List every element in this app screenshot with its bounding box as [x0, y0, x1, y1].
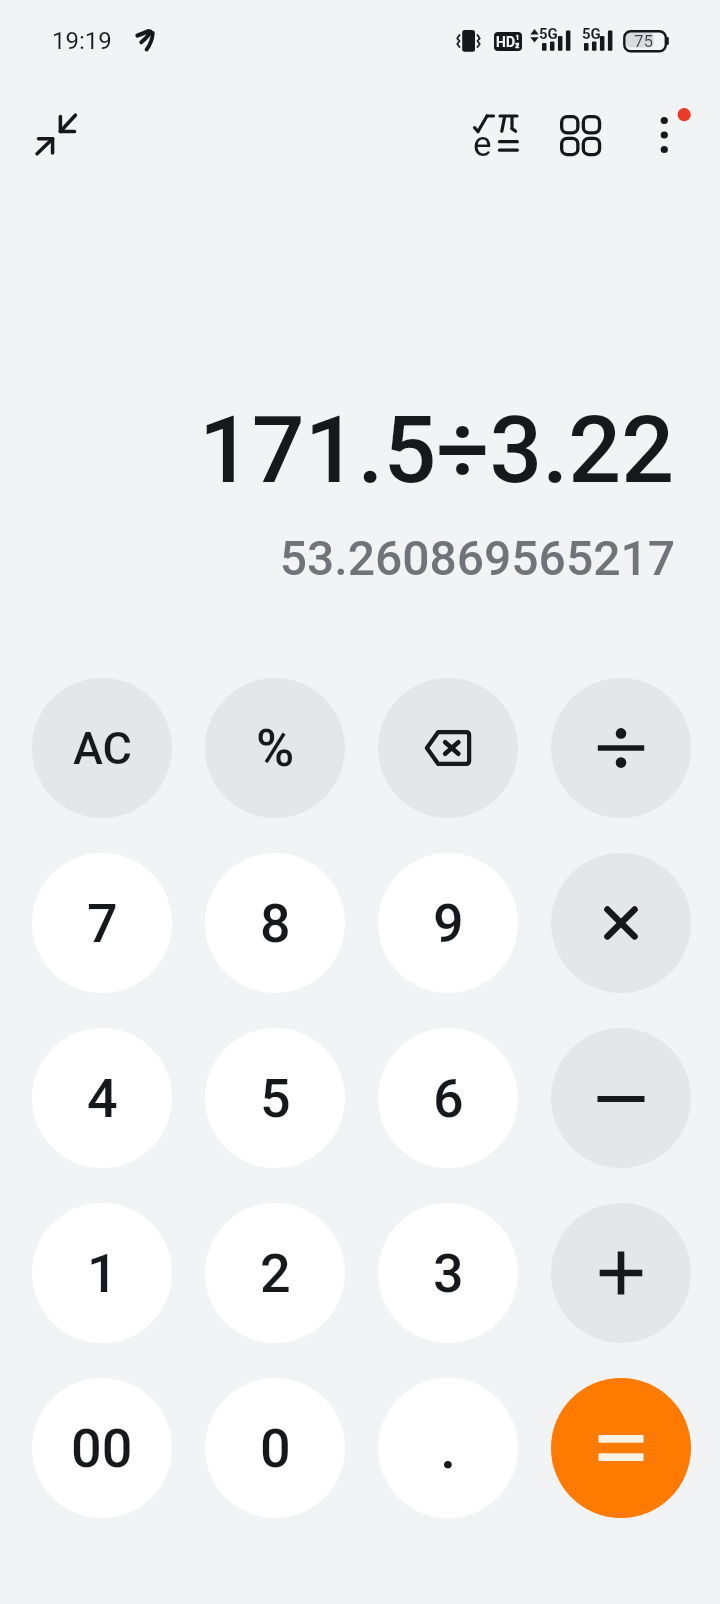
staticText: 75	[634, 31, 654, 51]
button[interactable]: 2	[205, 1203, 345, 1343]
button[interactable]: Equals	[551, 1378, 691, 1518]
button[interactable]: Minus	[551, 1028, 691, 1168]
button[interactable]: %	[205, 678, 345, 818]
staticText: 2	[260, 1242, 291, 1305]
staticText: 19:19	[52, 27, 112, 55]
staticText: 8	[260, 892, 291, 955]
button[interactable]: 00	[32, 1378, 172, 1518]
staticText: 5	[260, 1067, 291, 1130]
staticText: 00	[71, 1417, 133, 1480]
staticText: 7	[87, 892, 118, 955]
button[interactable]: Plus	[551, 1203, 691, 1343]
staticText: e	[473, 124, 492, 165]
staticText: 5G	[582, 25, 601, 43]
staticText: 6	[433, 1067, 464, 1130]
button[interactable]: .	[378, 1378, 518, 1518]
button[interactable]: 7	[32, 853, 172, 993]
button[interactable]: 3	[378, 1203, 518, 1343]
button[interactable]: History	[540, 96, 620, 174]
staticText: HD	[496, 34, 516, 50]
button[interactable]: Divide	[551, 678, 691, 818]
staticText: 3	[433, 1242, 464, 1305]
button[interactable]: 4	[32, 1028, 172, 1168]
staticText: 9	[433, 892, 464, 955]
button[interactable]: Backspace	[378, 678, 518, 818]
button[interactable]: Scientific mode	[454, 96, 538, 174]
staticText: 0	[260, 1417, 291, 1480]
staticText: .	[440, 1414, 457, 1482]
staticText: %	[256, 718, 295, 779]
staticText: 1	[87, 1242, 118, 1305]
staticText: 4	[87, 1067, 118, 1130]
staticText: 5G	[539, 25, 558, 43]
button[interactable]: 9	[378, 853, 518, 993]
button[interactable]: 5	[205, 1028, 345, 1168]
staticText: 171.5÷3.22	[198, 396, 674, 505]
button[interactable]: Collapse	[22, 101, 90, 169]
button[interactable]: 0	[205, 1378, 345, 1518]
staticText: AC	[73, 722, 132, 775]
staticText: 53.260869565217	[279, 530, 675, 586]
button[interactable]: AC	[32, 678, 172, 818]
button[interactable]: 6	[378, 1028, 518, 1168]
button[interactable]: More options	[624, 96, 704, 174]
button[interactable]: 1	[32, 1203, 172, 1343]
button[interactable]: Multiply	[551, 853, 691, 993]
button[interactable]: 8	[205, 853, 345, 993]
